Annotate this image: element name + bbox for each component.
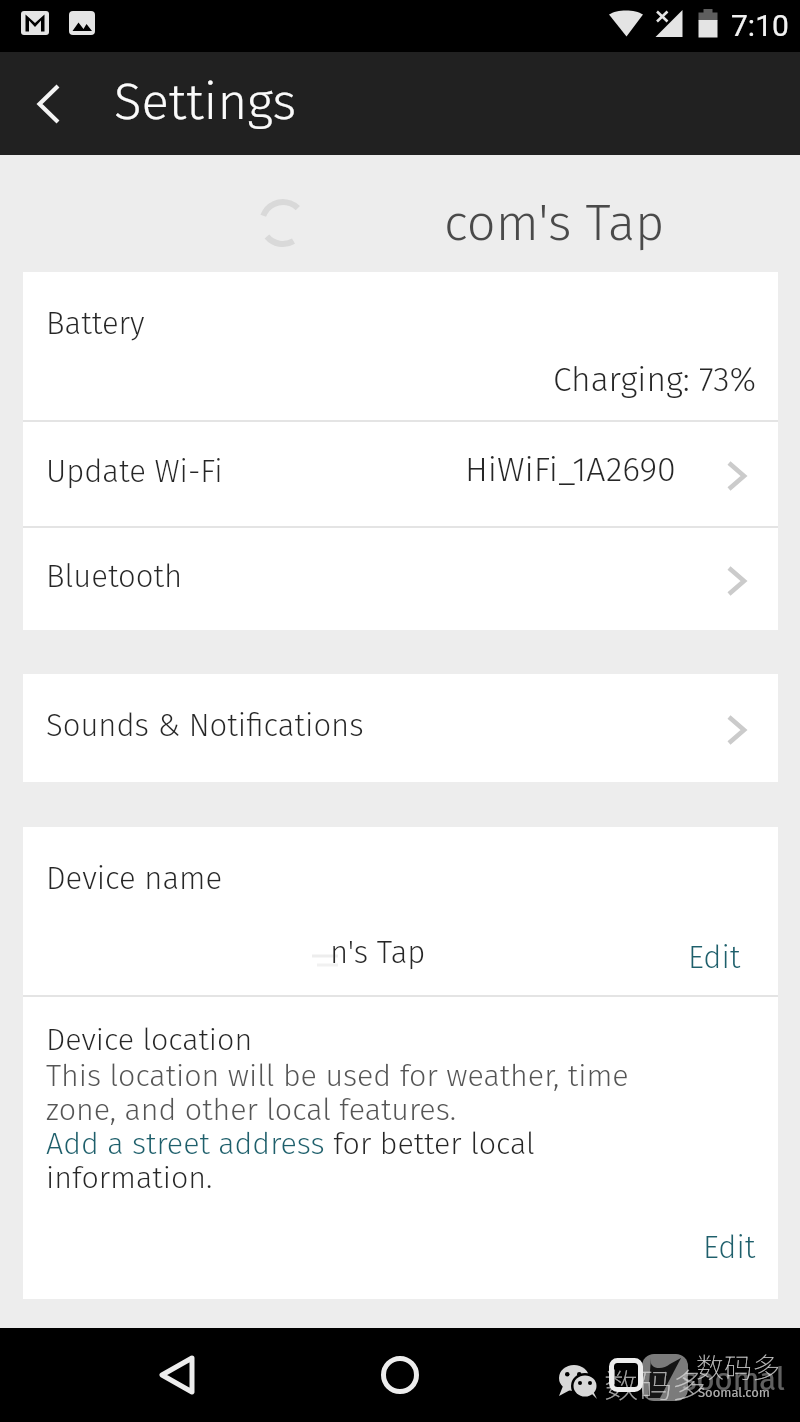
button[interactable]: Device name [23,827,778,995]
button[interactable]: Device location [23,997,778,1299]
staticText: This location will be used for weather, … [46,1058,646,1196]
staticText: Edit [688,939,741,976]
staticText: Soomal.com [698,1385,770,1401]
button[interactable]: Battery [23,272,778,420]
staticText: Update Wi-Fi [46,453,223,490]
staticText: Device location [46,1022,253,1058]
button[interactable]: Back [117,1328,237,1422]
staticText: 数码多 [696,1346,781,1387]
button[interactable]: Recent apps [566,1328,686,1422]
staticText: Sounds & Notifications [46,707,364,744]
staticText: Settings [114,71,297,132]
staticText: n's Tap [330,934,426,971]
button[interactable]: Home [340,1328,460,1422]
staticText: 7:10 [731,8,789,43]
button[interactable]: Bluetooth [23,528,778,630]
staticText: soomal [682,1361,785,1398]
button[interactable]: Update Wi-Fi [23,422,778,526]
staticText: HiWiFi_1A2690 [465,449,676,490]
staticText: Bluetooth [46,558,183,595]
staticText: Charging: 73% [553,360,757,400]
staticText: 数码多 [604,1359,706,1408]
staticText: com's Tap [444,193,665,254]
staticText: Device name [46,860,223,897]
staticText: Battery [46,305,145,342]
button[interactable]: Sounds & Notifications [23,674,778,782]
staticText: Edit [703,1229,756,1266]
button[interactable]: Navigate up [0,52,114,155]
